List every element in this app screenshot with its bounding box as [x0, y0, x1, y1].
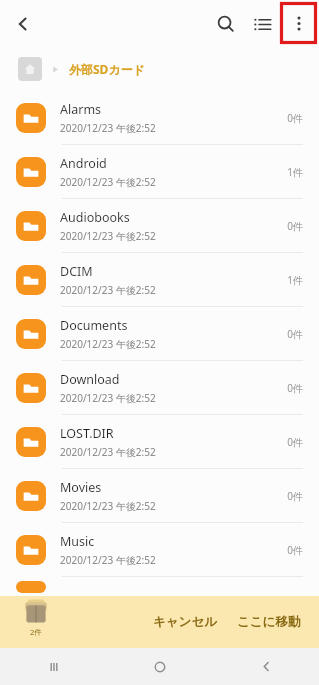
button[interactable]: More options [280, 2, 317, 44]
staticText: 2020/12/23 午後2:52 [60, 337, 156, 351]
staticText: 2020/12/23 午後2:52 [60, 175, 156, 189]
staticText: 2020/12/23 午後2:52 [60, 499, 156, 513]
staticText: 0件 [287, 489, 303, 503]
staticText: 2020/12/23 午後2:52 [60, 391, 156, 405]
button[interactable]: キャンセル [147, 606, 223, 638]
staticText: ここに移動 [237, 614, 301, 630]
staticText: 2020/12/23 午後2:52 [60, 445, 156, 459]
button[interactable]: Home [107, 648, 213, 685]
staticText: 2020/12/23 午後2:52 [60, 283, 156, 297]
staticText: キャンセル [153, 614, 217, 630]
button[interactable]: View as list [245, 7, 279, 41]
staticText: Download [60, 371, 120, 388]
staticText: 0件 [287, 435, 303, 449]
button[interactable]: Documents [0, 307, 319, 361]
button[interactable]: Search [209, 7, 243, 41]
staticText: 2020/12/23 午後2:52 [60, 229, 156, 243]
button[interactable]: Back [6, 7, 40, 41]
staticText: 2020/12/23 午後2:52 [60, 553, 156, 567]
button[interactable]: Back [213, 648, 319, 685]
staticText: LOST.DIR [60, 425, 114, 442]
staticText: DCIM [60, 263, 93, 280]
staticText: 2件 [30, 627, 42, 637]
button[interactable]: Movies [0, 469, 319, 523]
button[interactable]: LOST.DIR [0, 415, 319, 469]
staticText: Movies [60, 479, 102, 496]
button[interactable]: 2 selected items [14, 599, 58, 637]
button[interactable]: Download [0, 361, 319, 415]
button[interactable]: Home [18, 57, 42, 81]
staticText: 0件 [287, 111, 303, 125]
staticText: 外部SDカード [69, 61, 145, 77]
staticText: 1件 [287, 165, 303, 179]
staticText: 0件 [287, 327, 303, 341]
staticText: 1件 [287, 273, 303, 287]
button[interactable]: DCIM [0, 253, 319, 307]
button[interactable]: Music [0, 523, 319, 577]
button[interactable]: 外部SDカード [69, 61, 145, 77]
staticText: Alarms [60, 101, 102, 118]
staticText: 0件 [287, 219, 303, 233]
staticText: Music [60, 533, 95, 550]
button[interactable]: ここに移動 [231, 606, 307, 638]
button[interactable]: Alarms [0, 91, 319, 145]
staticText: 0件 [287, 543, 303, 557]
button[interactable]: Recent apps [0, 648, 107, 685]
staticText: 2020/12/23 午後2:52 [60, 121, 156, 135]
staticText: Audiobooks [60, 209, 130, 226]
staticText: Documents [60, 317, 128, 334]
staticText: Android [60, 155, 107, 172]
staticText: 0件 [287, 381, 303, 395]
button[interactable]: Audiobooks [0, 199, 319, 253]
button[interactable]: Android [0, 145, 319, 199]
